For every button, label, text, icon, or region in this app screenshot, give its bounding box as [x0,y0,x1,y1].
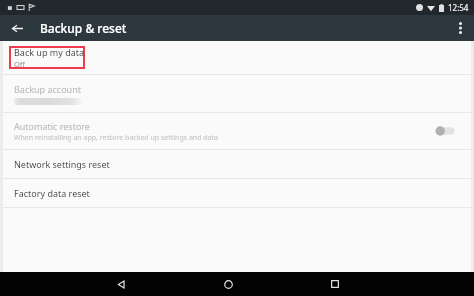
staticText: Network settings reset [14,158,110,170]
button[interactable]: Network settings reset [3,150,471,178]
staticText: 12:54 [448,2,469,13]
button[interactable]: Factory data reset [3,179,471,207]
button[interactable]: Recent apps [320,272,350,296]
staticText: Automatic restore [14,120,90,132]
button[interactable]: Back [106,272,136,296]
button[interactable]: Home [213,272,243,296]
staticText: Back up my data [14,46,85,58]
button[interactable]: More options [449,17,471,39]
button[interactable]: Back up my data [3,41,471,74]
button[interactable]: Back [6,17,28,39]
button[interactable]: Automatic restore toggle [433,124,457,138]
staticText: When reinstalling an app, restore backed… [14,133,218,143]
staticText: Backup account [14,83,81,95]
button[interactable]: Backup account [3,75,471,112]
staticText: Factory data reset [14,187,90,199]
button[interactable]: Automatic restore [3,113,471,149]
staticText: Off [14,59,26,69]
staticText: Backup & reset [40,20,127,36]
